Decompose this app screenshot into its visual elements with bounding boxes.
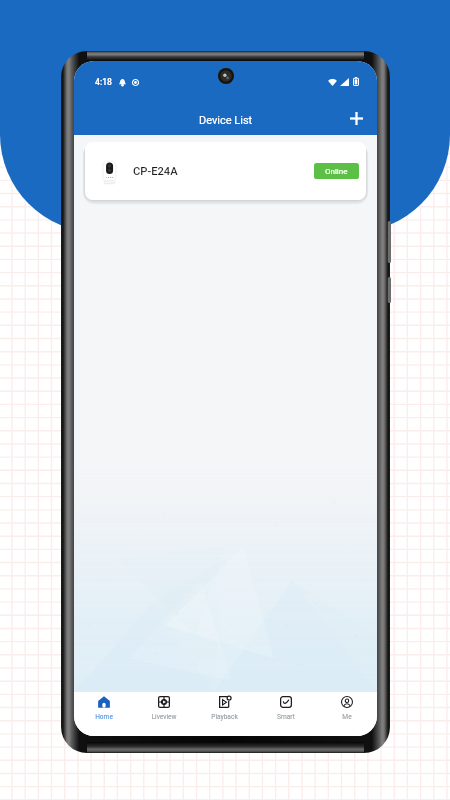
button[interactable]: Me [316,692,377,736]
staticText: CP-E24A [133,165,178,178]
staticText: Smart [277,713,295,721]
button[interactable]: Online [314,163,359,179]
button[interactable]: Liveview [134,692,194,736]
staticText: Device List [199,114,253,127]
button[interactable]: Playback [194,692,255,736]
button[interactable]: Smart [255,692,316,736]
staticText: Home [95,713,113,721]
button[interactable]: Home [74,692,134,736]
button[interactable]: CP-E24A [85,142,366,200]
button[interactable]: Add device [343,105,369,131]
staticText: 4:18 [95,77,112,87]
staticText: Liveview [151,713,177,721]
staticText: Me [342,713,352,721]
staticText: Playback [211,713,238,721]
staticText: Online [325,167,348,176]
